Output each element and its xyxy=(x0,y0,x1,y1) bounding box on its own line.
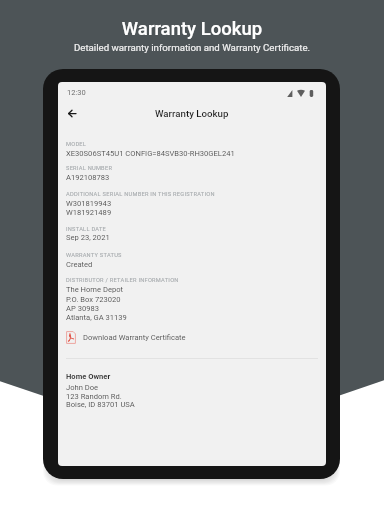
staticText: XE30S06ST45U1 CONFIG=84SVB30-RH30GEL241 xyxy=(66,149,235,158)
staticText: W301819943 xyxy=(66,199,112,208)
staticText: Download Warranty Certificate xyxy=(83,333,186,342)
staticText: AP 30983 xyxy=(66,304,99,313)
staticText: Home Owner xyxy=(66,372,111,381)
staticText: Detailed warranty information and Warran… xyxy=(0,42,384,53)
staticText: 12:30 xyxy=(67,88,86,97)
staticText: INSTALL DATE xyxy=(66,226,107,233)
button[interactable]: Download Warranty Certificate xyxy=(66,328,318,346)
staticText: 123 Random Rd. xyxy=(66,392,122,401)
staticText: P.O. Box 723020 xyxy=(66,295,121,304)
staticText: DISTRIBUTOR / RETAILER INFORMATION xyxy=(66,277,179,284)
staticText: Warranty Lookup xyxy=(155,108,229,119)
staticText: A192108783 xyxy=(66,173,110,182)
button[interactable]: Back xyxy=(61,102,83,124)
staticText: SERIAL NUMBER xyxy=(66,165,113,172)
staticText: John Doe xyxy=(66,383,99,392)
staticText: ADDITIONAL SERIAL NUMBER IN THIS REGISTR… xyxy=(66,191,215,198)
staticText: Warranty Lookup xyxy=(0,18,384,40)
staticText: WARRANTY STATUS xyxy=(66,252,122,259)
staticText: The Home Depot xyxy=(66,285,124,294)
staticText: W181921489 xyxy=(66,208,112,217)
staticText: Atlanta, GA 31139 xyxy=(66,313,127,322)
staticText: Boise, ID 83701 USA xyxy=(66,400,135,409)
staticText: Sep 23, 2021 xyxy=(66,233,110,242)
staticText: Created xyxy=(66,260,93,269)
staticText: MODEL xyxy=(66,141,87,148)
